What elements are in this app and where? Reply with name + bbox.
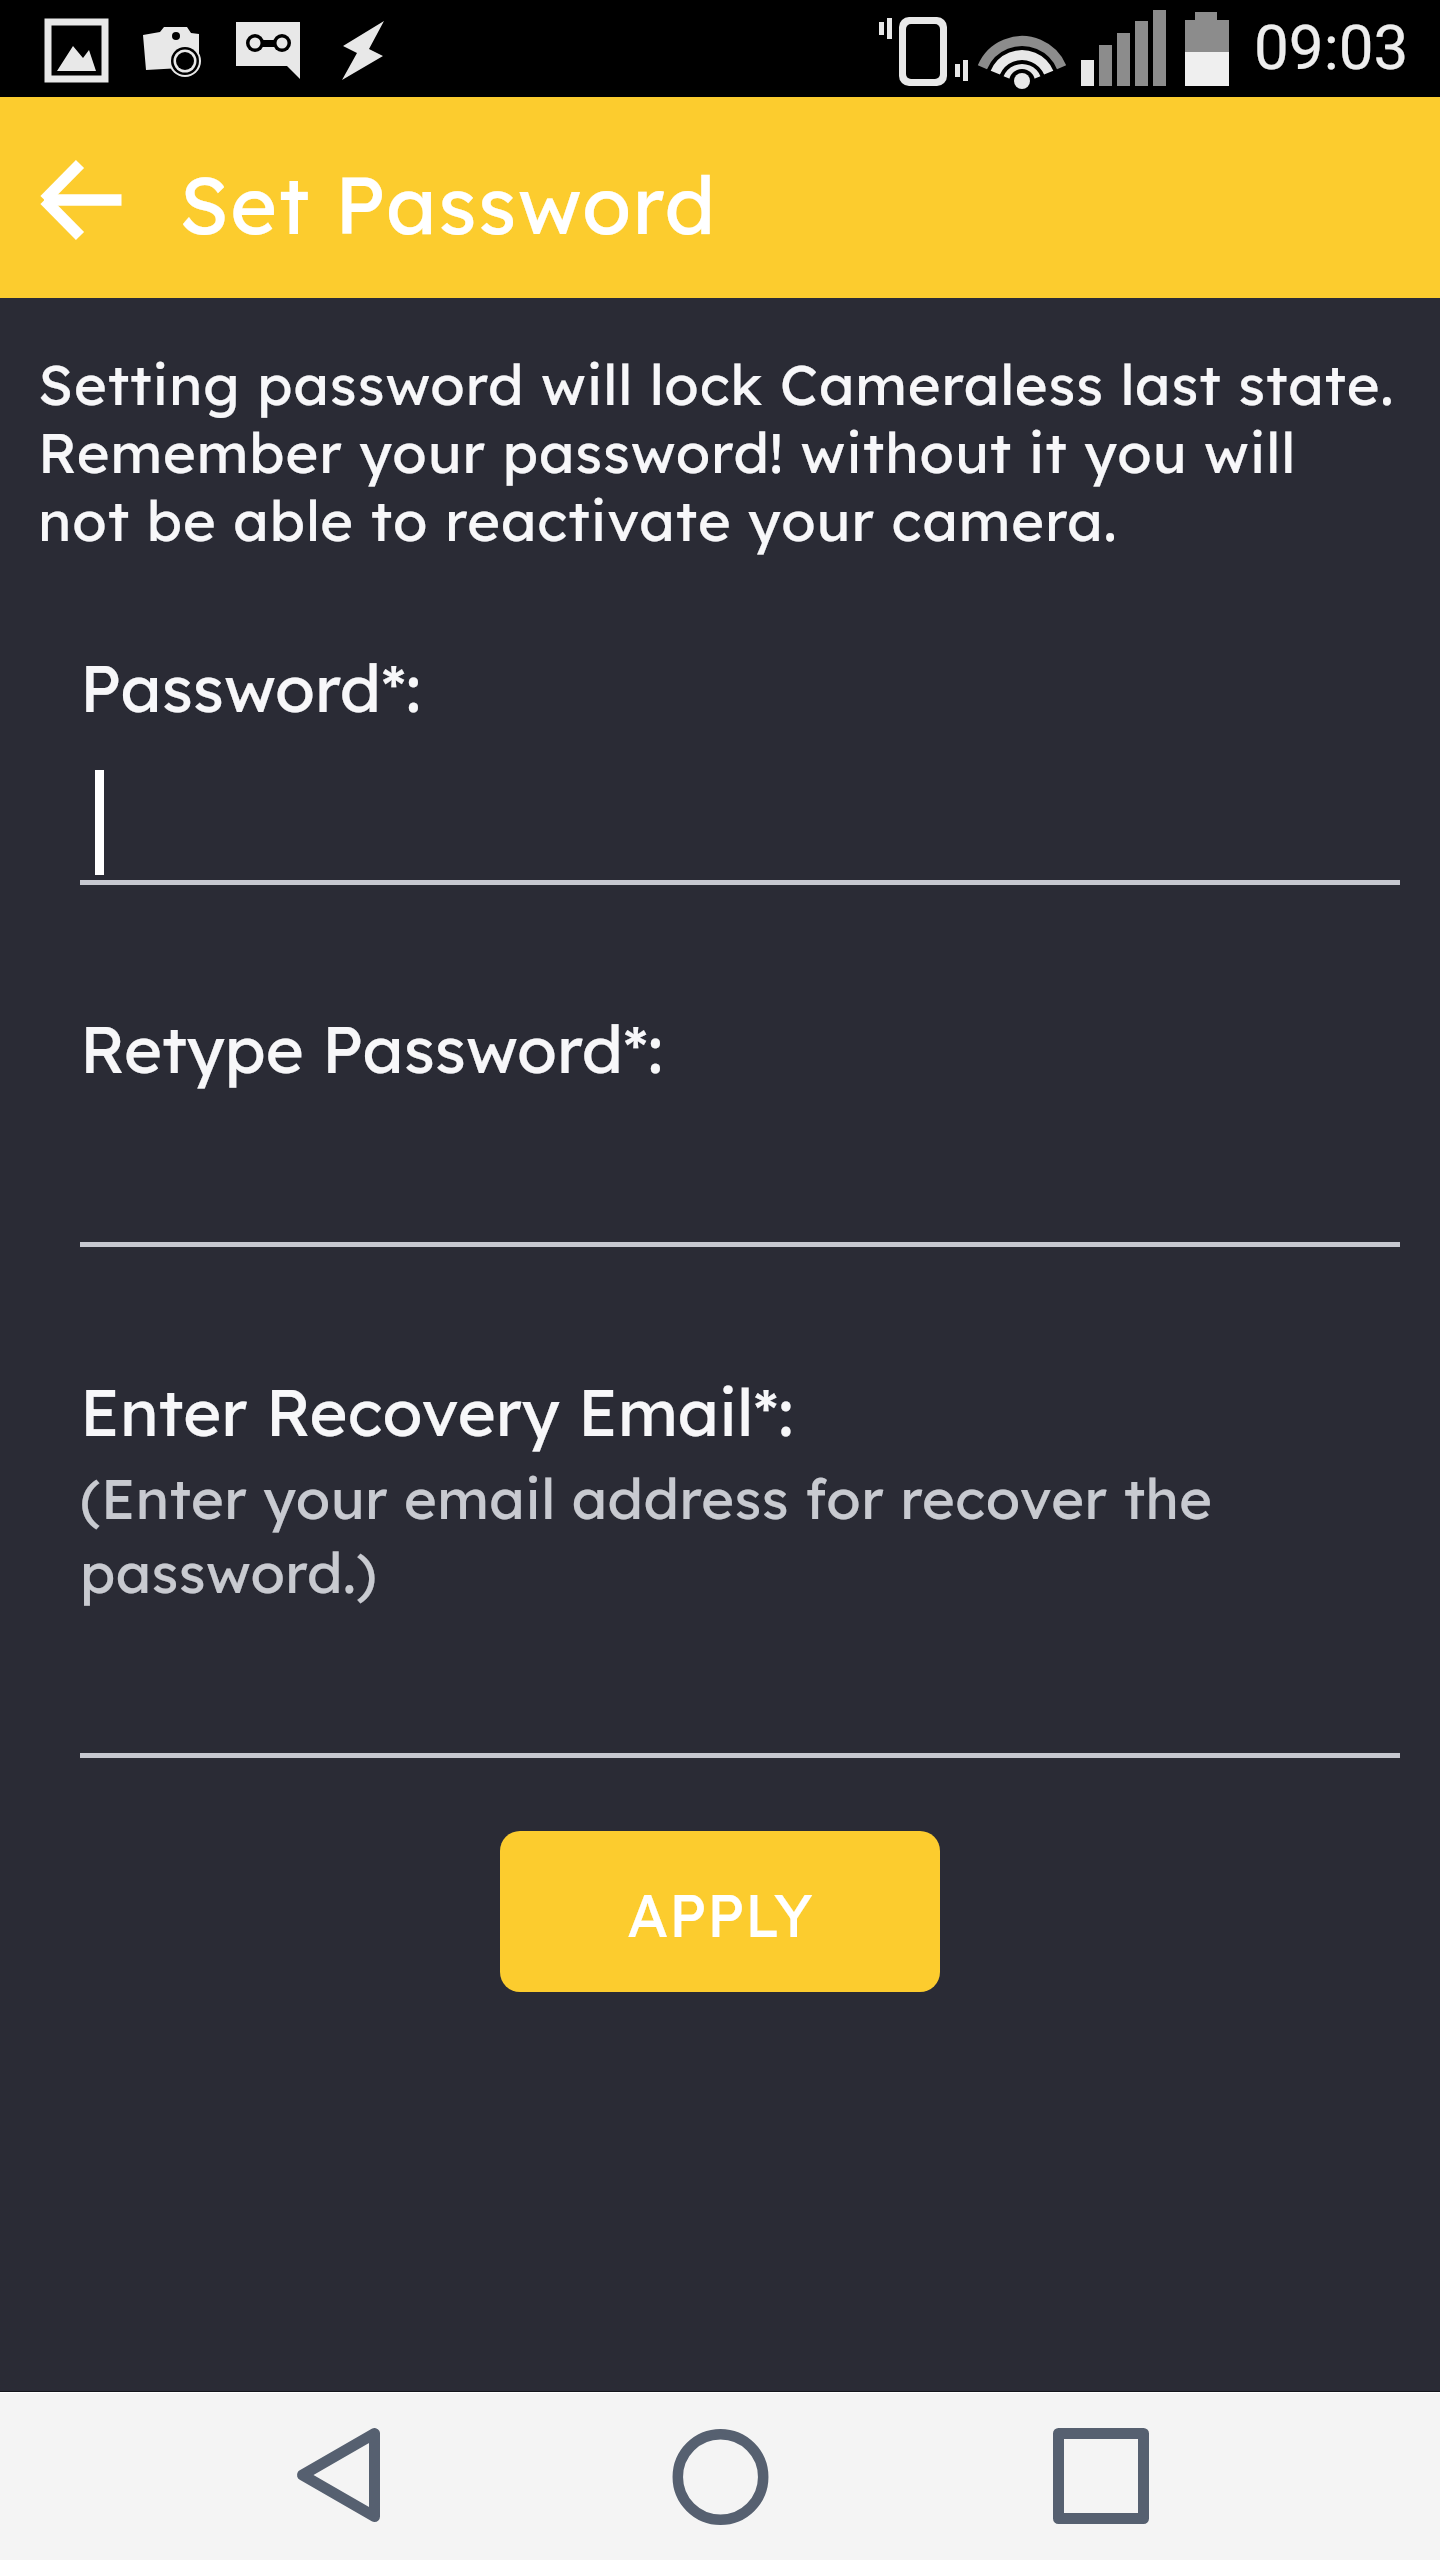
- button[interactable]: Back: [270, 2402, 410, 2550]
- staticText: Setting password will lock Cameraless la…: [38, 350, 1400, 554]
- staticText: (Enter your email address for recover th…: [80, 1460, 1325, 1608]
- staticText: APPLY: [627, 1883, 814, 1951]
- button[interactable]: APPLY: [500, 1831, 940, 1992]
- button[interactable]: Back: [8, 128, 152, 272]
- staticText: Retype Password*:: [80, 1011, 663, 1089]
- staticText: Password*:: [80, 650, 421, 728]
- staticText: Set Password: [179, 160, 717, 252]
- staticText: Enter Recovery Email*:: [80, 1374, 794, 1452]
- button[interactable]: Home: [650, 2402, 790, 2550]
- staticText: 09:03: [1254, 15, 1409, 83]
- button[interactable]: Recents: [1030, 2402, 1170, 2550]
